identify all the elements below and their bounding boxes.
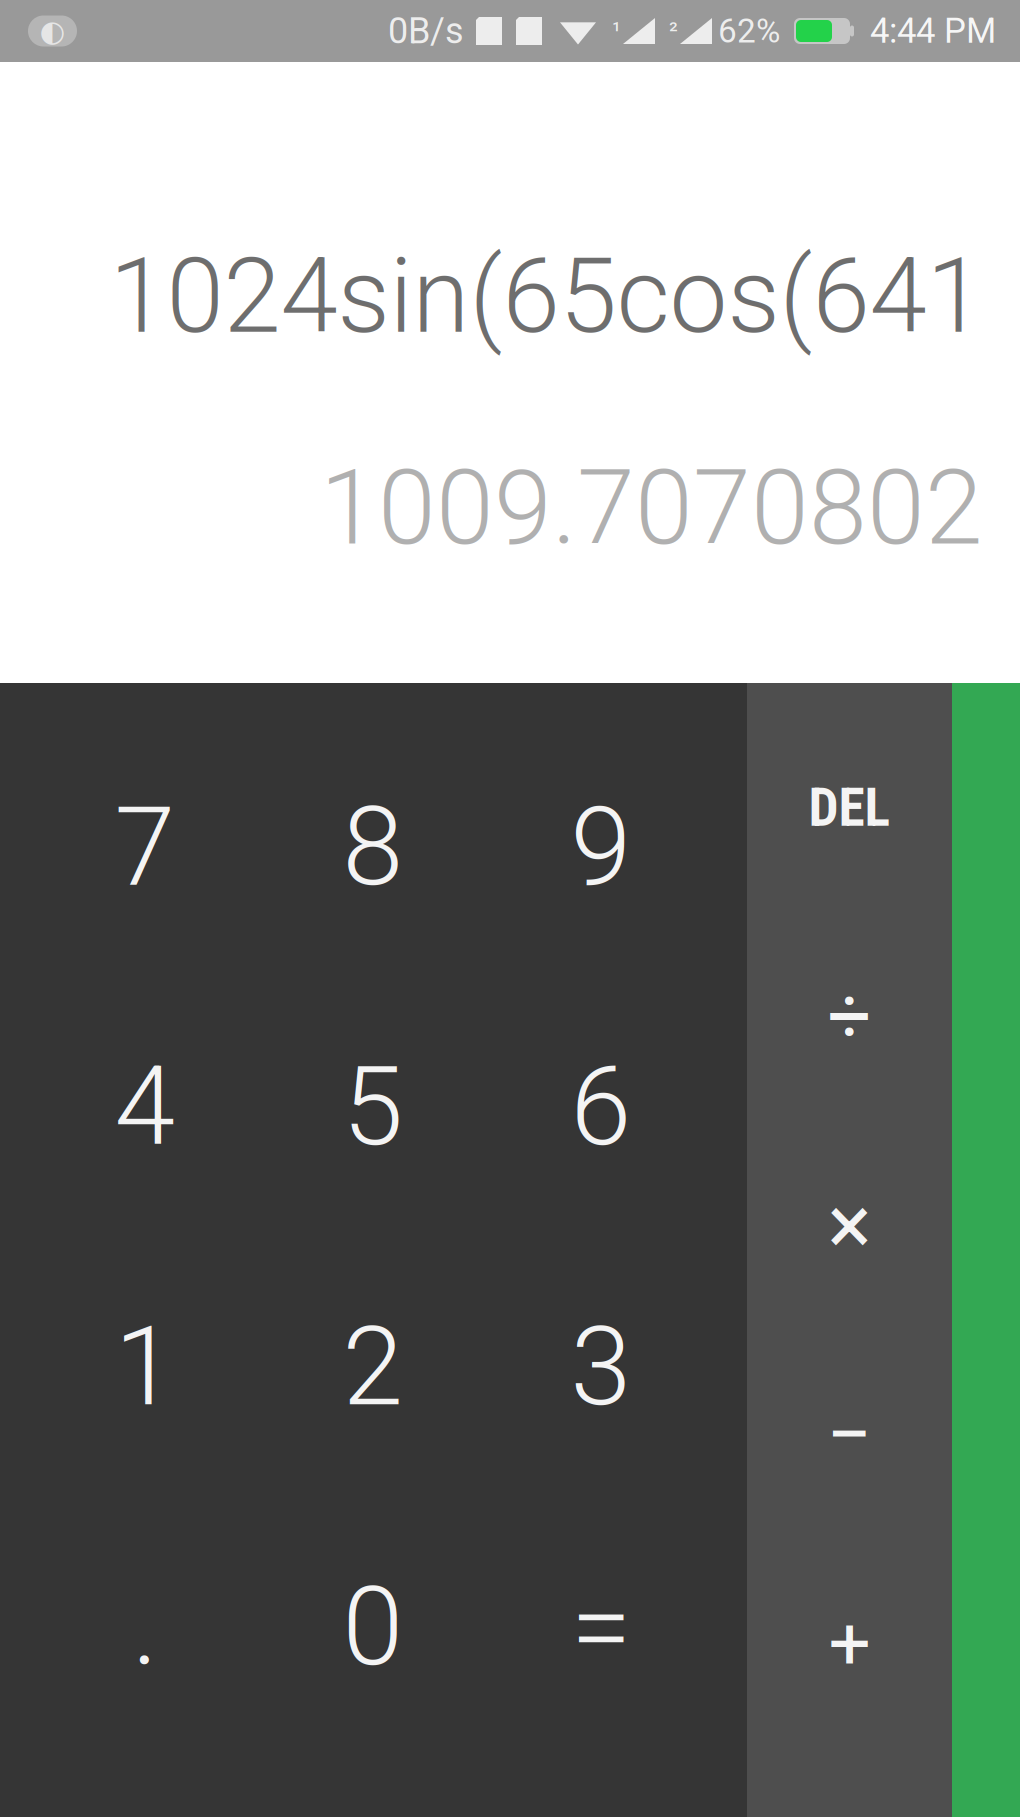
- staticText: 4:44 PM: [870, 11, 996, 51]
- staticText: ¹: [612, 17, 621, 45]
- staticText: .: [132, 1563, 158, 1691]
- button[interactable]: Add: [747, 1539, 952, 1748]
- staticText: ◐: [39, 14, 65, 48]
- staticText: ²: [669, 17, 678, 45]
- staticText: 9: [570, 783, 631, 911]
- staticText: 1: [114, 1303, 175, 1431]
- staticText: −: [826, 1388, 872, 1481]
- button[interactable]: 2: [259, 1237, 487, 1497]
- staticText: 8: [342, 783, 403, 911]
- staticText: 3: [570, 1303, 631, 1431]
- button[interactable]: Multiply: [747, 1121, 952, 1330]
- staticText: 0: [342, 1563, 403, 1691]
- staticText: 2: [342, 1303, 403, 1431]
- staticText: 7: [114, 783, 175, 911]
- staticText: 1024sin(65cos(641: [109, 236, 983, 357]
- button[interactable]: 7: [31, 717, 259, 977]
- button[interactable]: 1: [31, 1237, 259, 1497]
- staticText: =: [571, 1563, 631, 1691]
- staticText: 0B/s: [388, 10, 464, 52]
- button[interactable]: 5: [259, 977, 487, 1237]
- button[interactable]: .: [31, 1497, 259, 1757]
- button[interactable]: 4: [31, 977, 259, 1237]
- staticText: 62%: [718, 11, 780, 51]
- button[interactable]: 3: [487, 1237, 715, 1497]
- button[interactable]: Subtract: [747, 1330, 952, 1539]
- button[interactable]: Delete: [747, 703, 952, 912]
- staticText: 1009.7070802: [320, 447, 983, 569]
- staticText: 4: [114, 1043, 175, 1171]
- staticText: 5: [342, 1043, 403, 1171]
- button[interactable]: 9: [487, 717, 715, 977]
- staticText: ×: [827, 1177, 871, 1274]
- button[interactable]: =: [487, 1497, 715, 1757]
- button[interactable]: 0: [259, 1497, 487, 1757]
- staticText: DEL: [808, 776, 890, 839]
- staticText: 6: [570, 1043, 631, 1171]
- staticText: +: [828, 1600, 870, 1687]
- button[interactable]: 8: [259, 717, 487, 977]
- button[interactable]: Divide: [747, 912, 952, 1121]
- button[interactable]: 6: [487, 977, 715, 1237]
- staticText: ÷: [827, 971, 871, 1062]
